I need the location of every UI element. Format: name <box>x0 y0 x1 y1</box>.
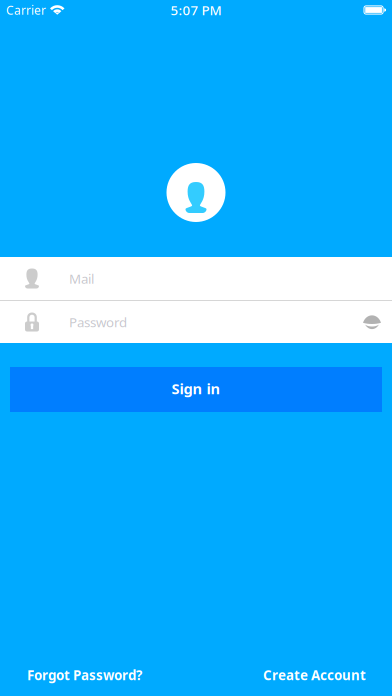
button[interactable]: Sign in <box>10 367 382 412</box>
staticText: Carrier <box>6 2 46 18</box>
button[interactable]: Forgot Password? <box>27 666 142 684</box>
button[interactable]: Password <box>0 301 392 343</box>
staticText: Password <box>69 313 127 331</box>
staticText: Sign in <box>171 379 220 398</box>
staticText: 5:07 PM <box>170 1 221 19</box>
staticText: Create Account <box>263 666 366 684</box>
staticText: Forgot Password? <box>27 666 142 684</box>
button[interactable]: Show password <box>355 305 389 339</box>
staticText: Mail <box>69 270 94 287</box>
button[interactable]: Mail <box>0 257 392 300</box>
button[interactable]: Create Account <box>263 666 366 684</box>
